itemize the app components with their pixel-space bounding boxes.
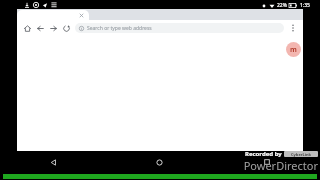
button[interactable]: Back xyxy=(0,151,106,173)
button[interactable]: Close tab xyxy=(17,10,89,20)
staticText: 1:35 xyxy=(300,2,310,9)
button[interactable]: Back xyxy=(34,22,47,35)
button[interactable]: Account badge xyxy=(286,42,301,57)
staticText: Search or type web address xyxy=(87,25,152,32)
button[interactable]: More options xyxy=(287,22,299,34)
button[interactable]: Home xyxy=(106,151,213,173)
staticText: m xyxy=(290,45,297,55)
staticText: Recorded by xyxy=(245,150,282,158)
button[interactable]: Home xyxy=(21,22,34,35)
other: Close tab xyxy=(79,13,84,18)
button[interactable]: Recent apps xyxy=(213,151,320,173)
staticText: 22% xyxy=(277,2,287,9)
staticText: PowerDirector xyxy=(243,158,318,173)
button[interactable]: Forward xyxy=(47,22,60,35)
button[interactable]: Search or type web address xyxy=(75,23,284,33)
button[interactable]: Reload xyxy=(60,22,73,35)
staticText: CyberLink xyxy=(291,152,312,157)
